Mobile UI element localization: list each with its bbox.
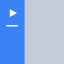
button[interactable]: Play video [0, 0, 25, 64]
